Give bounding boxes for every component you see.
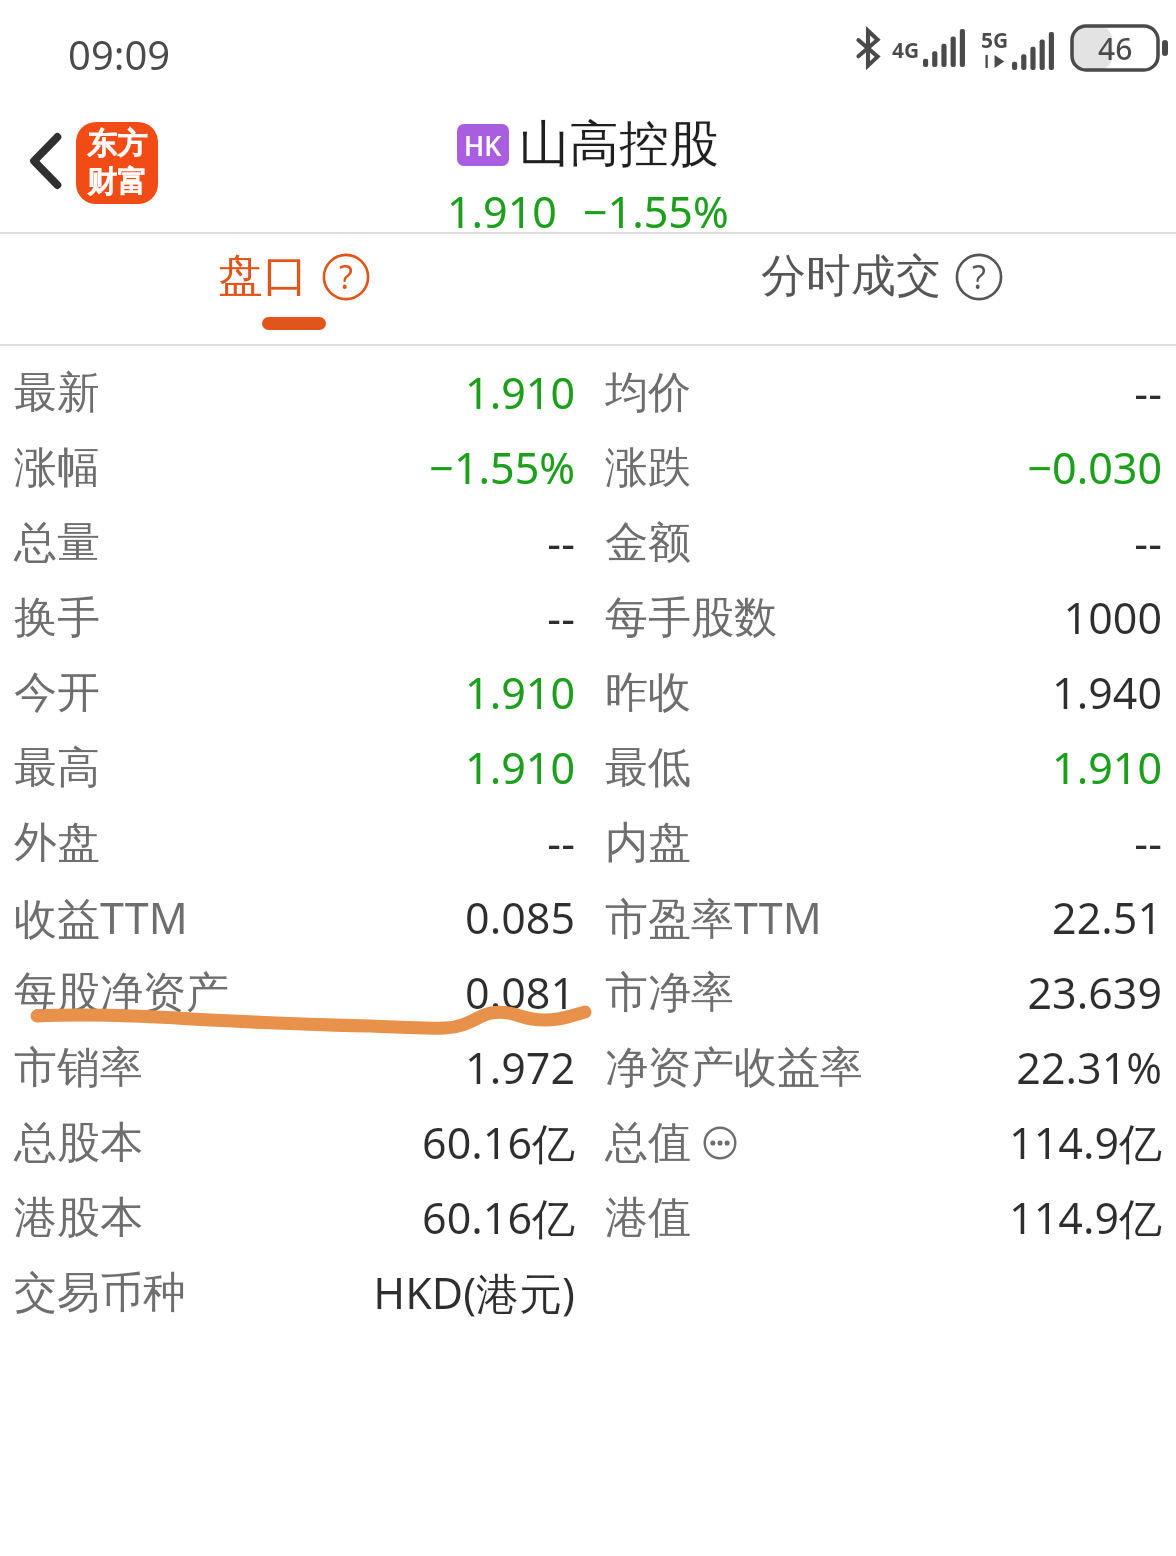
staticText: --: [547, 813, 575, 872]
staticText: 市盈率TTM: [605, 888, 822, 947]
staticText: 22.31%: [1016, 1038, 1162, 1097]
staticText: 1.910: [1052, 738, 1162, 797]
staticText: 1.940: [1052, 663, 1162, 722]
staticText: 1.972: [465, 1038, 575, 1097]
staticText: 最高: [14, 741, 100, 795]
staticText: 外盘: [14, 816, 100, 870]
staticText: 东方: [87, 125, 147, 163]
staticText: 今开: [14, 666, 100, 720]
staticText: 金额: [605, 516, 691, 570]
staticText: 1.910: [447, 182, 557, 241]
staticText: --: [1134, 513, 1162, 572]
button[interactable]: 总量: [0, 505, 1176, 580]
staticText: 1.910: [465, 738, 575, 797]
staticText: 山高控股: [519, 113, 719, 176]
button[interactable]: 市销率: [0, 1030, 1176, 1105]
staticText: 市净率: [605, 966, 734, 1020]
staticText: --: [1134, 363, 1162, 422]
staticText: 港股本: [14, 1191, 143, 1245]
staticText: 涨幅: [14, 441, 100, 495]
staticText: HKD(港元): [373, 1263, 575, 1322]
button[interactable]: Back: [8, 118, 84, 204]
button[interactable]: 东方财富: [76, 122, 158, 204]
staticText: 涨跌: [605, 441, 691, 495]
button[interactable]: 最新: [0, 355, 1176, 430]
staticText: 114.9亿: [1009, 1188, 1162, 1247]
staticText: 每股净资产: [14, 966, 229, 1020]
button[interactable]: 最高: [0, 730, 1176, 805]
button[interactable]: 换手: [0, 580, 1176, 655]
button[interactable]: 分时成交: [588, 234, 1176, 344]
staticText: −1.55%: [429, 438, 575, 497]
staticText: 总量: [14, 516, 100, 570]
staticText: 最新: [14, 366, 100, 420]
button[interactable]: 交易币种: [0, 1255, 1176, 1330]
button[interactable]: 港股本: [0, 1180, 1176, 1255]
staticText: 总股本: [14, 1116, 143, 1170]
staticText: --: [547, 588, 575, 647]
staticText: HK: [464, 127, 502, 164]
staticText: 114.9亿: [1009, 1113, 1162, 1172]
staticText: 总值: [605, 1116, 691, 1170]
staticText: 市销率: [14, 1041, 143, 1095]
staticText: 最低: [605, 741, 691, 795]
button[interactable]: 外盘: [0, 805, 1176, 880]
staticText: −1.55%: [583, 182, 729, 241]
button[interactable]: Help: [955, 253, 1003, 301]
staticText: 港值: [605, 1191, 691, 1245]
button[interactable]: 总股本: [0, 1105, 1176, 1180]
button[interactable]: 收益TTM: [0, 880, 1176, 955]
staticText: 46: [1098, 28, 1133, 69]
staticText: 1.910: [465, 663, 575, 722]
staticText: 60.16亿: [422, 1188, 575, 1247]
staticText: 5G: [981, 26, 1009, 55]
staticText: 昨收: [605, 666, 691, 720]
staticText: 盘口: [218, 248, 308, 305]
staticText: 0.085: [465, 888, 575, 947]
staticText: ?: [339, 255, 353, 299]
staticText: 22.51: [1052, 888, 1162, 947]
button[interactable]: 涨幅: [0, 430, 1176, 505]
staticText: 交易币种: [14, 1266, 186, 1320]
staticText: −0.030: [1027, 438, 1162, 497]
staticText: 0.081: [465, 963, 575, 1022]
button[interactable]: Market cap info: [701, 1124, 739, 1162]
staticText: 净资产收益率: [605, 1041, 863, 1095]
staticText: 均价: [605, 366, 691, 420]
button[interactable]: 今开: [0, 655, 1176, 730]
staticText: 分时成交: [761, 248, 941, 305]
staticText: 23.639: [1027, 963, 1162, 1022]
button[interactable]: 盘口: [0, 234, 588, 344]
staticText: 1.910: [465, 363, 575, 422]
staticText: ?: [972, 255, 986, 299]
staticText: 换手: [14, 591, 100, 645]
staticText: 60.16亿: [422, 1113, 575, 1172]
staticText: 1000: [1063, 588, 1162, 647]
staticText: 内盘: [605, 816, 691, 870]
staticText: 收益TTM: [14, 888, 188, 947]
staticText: --: [1134, 813, 1162, 872]
staticText: 09:09: [68, 27, 171, 81]
staticText: 4G: [892, 36, 920, 65]
staticText: 财富: [87, 163, 147, 201]
button[interactable]: 每股净资产: [0, 955, 1176, 1030]
staticText: --: [547, 513, 575, 572]
staticText: 每手股数: [605, 591, 777, 645]
button[interactable]: Help: [322, 253, 370, 301]
